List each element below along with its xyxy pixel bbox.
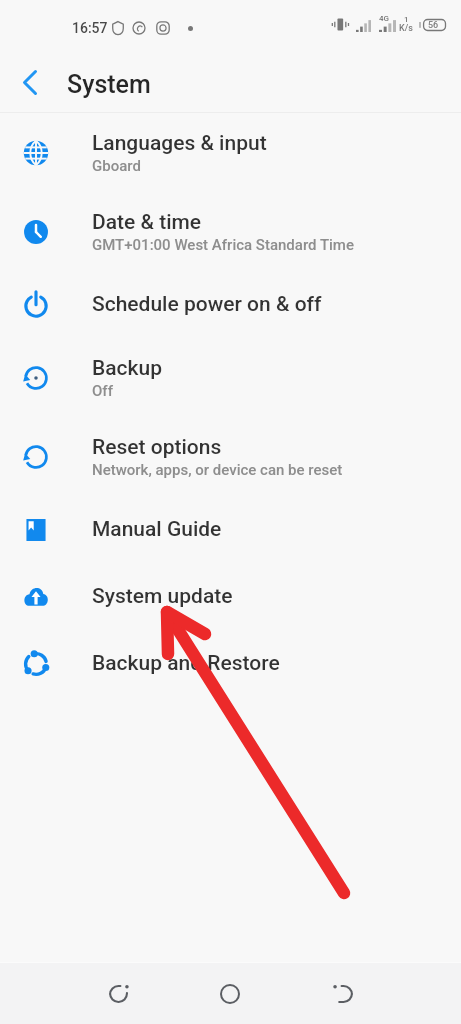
staticText: 16:57	[72, 20, 108, 36]
staticText: GMT+01:00 West Africa Standard Time	[92, 236, 354, 254]
staticText: Off	[92, 382, 113, 400]
staticText: 4G	[379, 14, 389, 23]
button[interactable]: Back	[315, 963, 371, 1024]
staticText: Backup and Restore	[92, 651, 280, 676]
button[interactable]: System update	[0, 563, 461, 630]
staticText: Backup	[92, 356, 162, 381]
staticText: 56	[428, 20, 439, 31]
button[interactable]: Recents	[90, 963, 146, 1024]
staticText: System	[67, 70, 151, 99]
staticText: 1	[404, 15, 409, 24]
button[interactable]: Manual Guide	[0, 496, 461, 563]
staticText: Gboard	[92, 157, 141, 175]
button[interactable]: Home	[202, 963, 258, 1024]
button[interactable]: Reset options	[0, 417, 461, 496]
staticText: K/s	[399, 23, 413, 34]
staticText: Languages & input	[92, 131, 267, 156]
button[interactable]: Schedule power on & off	[0, 271, 461, 338]
button[interactable]: Date & time	[0, 192, 461, 271]
button[interactable]: Backup	[0, 338, 461, 417]
button[interactable]: Back	[6, 58, 54, 106]
button[interactable]: Backup and Restore	[0, 630, 461, 697]
staticText: System update	[92, 584, 233, 609]
staticText: Network, apps, or device can be reset	[92, 461, 343, 479]
staticText: Manual Guide	[92, 517, 222, 542]
button[interactable]: Languages & input	[0, 113, 461, 192]
staticText: Schedule power on & off	[92, 292, 322, 317]
staticText: Date & time	[92, 210, 202, 235]
staticText: Reset options	[92, 435, 222, 460]
